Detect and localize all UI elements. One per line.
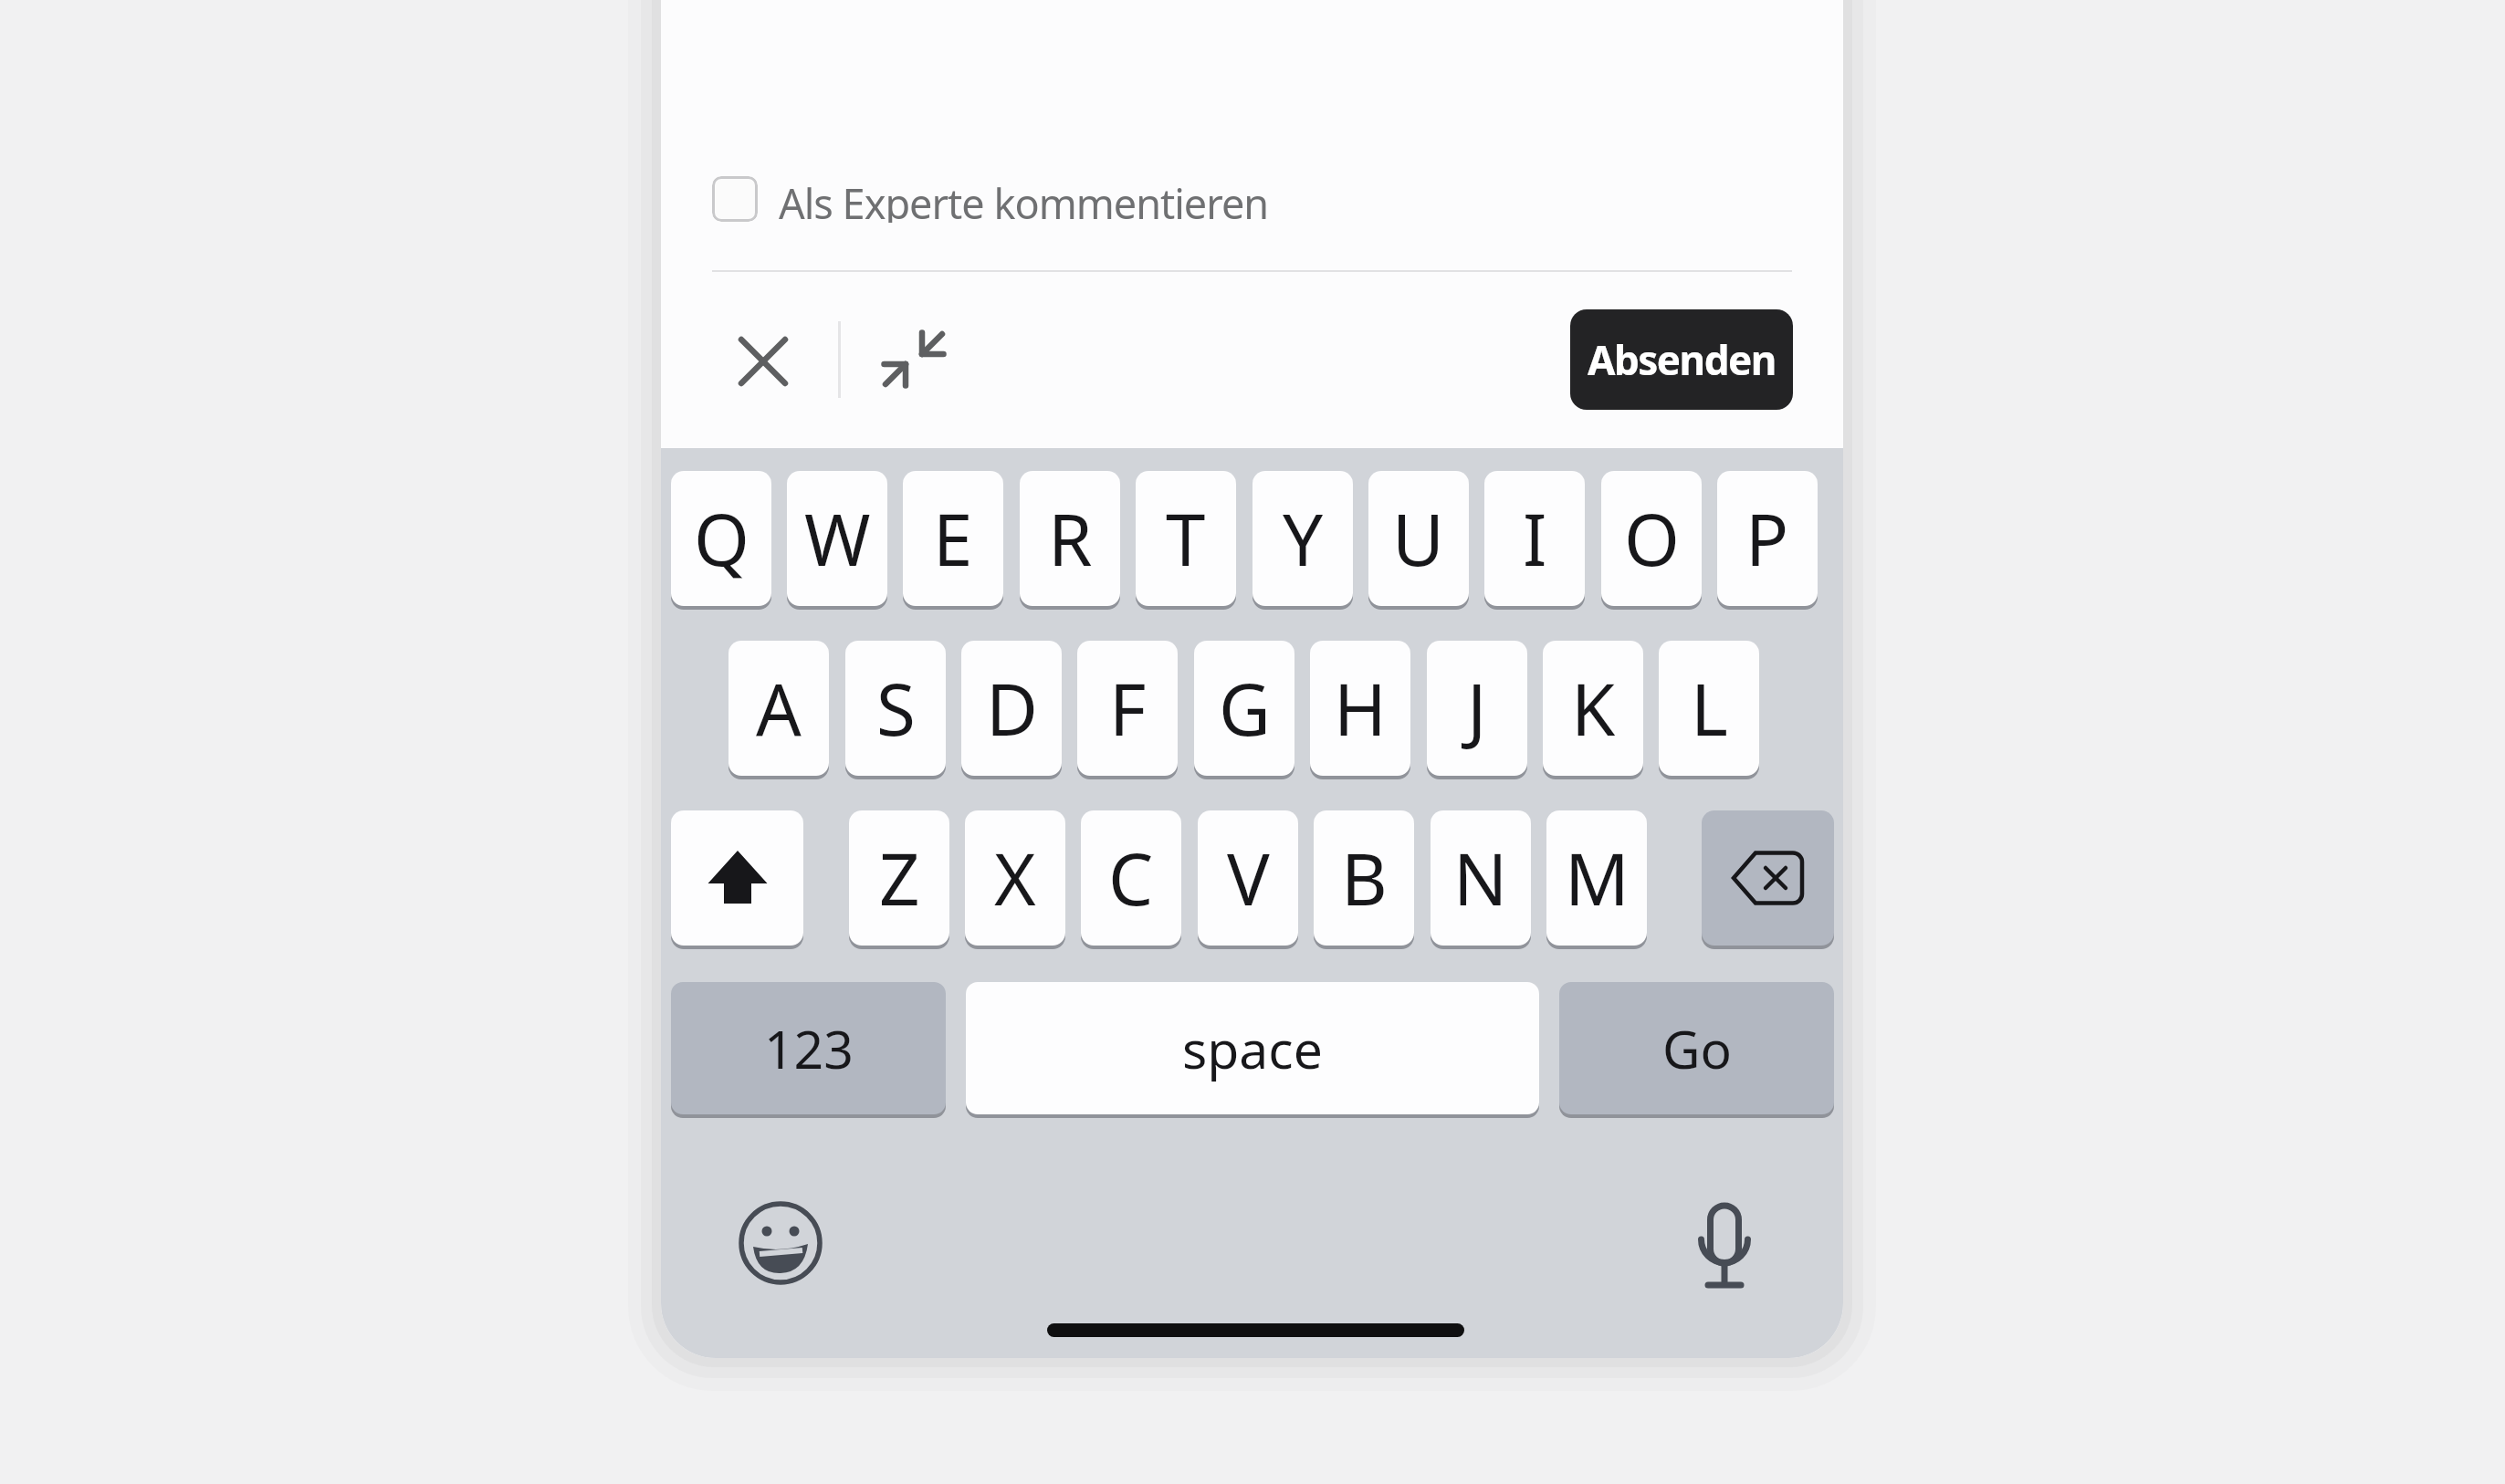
button[interactable]: T — [1136, 471, 1236, 606]
staticText: K — [1571, 660, 1616, 757]
staticText: R — [1048, 490, 1093, 587]
staticText: I — [1523, 490, 1547, 587]
button[interactable]: G — [1194, 641, 1294, 776]
staticText: C — [1108, 830, 1154, 926]
staticText: M — [1565, 830, 1630, 926]
button[interactable] — [1702, 810, 1834, 946]
staticText: Q — [694, 490, 749, 587]
button[interactable]: Als Experte kommentieren — [712, 175, 1269, 223]
staticText: Absenden — [1588, 332, 1776, 387]
staticText: space — [1182, 1013, 1323, 1084]
staticText: W — [804, 490, 871, 587]
button[interactable] — [877, 323, 950, 396]
button[interactable]: space — [966, 982, 1539, 1114]
staticText: B — [1341, 830, 1388, 926]
button[interactable]: Y — [1252, 471, 1353, 606]
staticText: T — [1166, 490, 1206, 587]
button[interactable]: A — [728, 641, 829, 776]
staticText: O — [1624, 490, 1680, 587]
staticText: X — [994, 830, 1036, 926]
button[interactable]: X — [965, 810, 1065, 946]
button[interactable]: S — [845, 641, 946, 776]
button[interactable]: H — [1310, 641, 1410, 776]
staticText: G — [1219, 660, 1271, 757]
button[interactable]: J — [1427, 641, 1527, 776]
button[interactable]: Absenden — [1570, 309, 1793, 410]
staticText: H — [1334, 660, 1387, 757]
button[interactable]: D — [961, 641, 1062, 776]
button[interactable]: P — [1717, 471, 1818, 606]
button[interactable]: U — [1368, 471, 1469, 606]
button[interactable]: W — [787, 471, 887, 606]
button[interactable]: K — [1543, 641, 1643, 776]
button[interactable]: Go — [1559, 982, 1834, 1114]
button[interactable]: C — [1081, 810, 1181, 946]
button[interactable]: F — [1077, 641, 1178, 776]
button[interactable]: L — [1659, 641, 1759, 776]
button[interactable]: E — [903, 471, 1003, 606]
button[interactable]: R — [1020, 471, 1120, 606]
button[interactable]: V — [1198, 810, 1298, 946]
staticText: Y — [1283, 490, 1324, 587]
button[interactable]: B — [1314, 810, 1414, 946]
button[interactable]: 123 — [671, 982, 946, 1114]
button[interactable]: N — [1431, 810, 1531, 946]
staticText: P — [1745, 490, 1789, 587]
button[interactable]: I — [1484, 471, 1585, 606]
button[interactable] — [1674, 1196, 1775, 1296]
button[interactable] — [730, 1193, 831, 1293]
staticText: 123 — [764, 1013, 854, 1084]
staticText: A — [756, 660, 802, 757]
button[interactable]: M — [1546, 810, 1647, 946]
button[interactable]: Z — [849, 810, 949, 946]
button[interactable]: Q — [671, 471, 771, 606]
button[interactable]: O — [1601, 471, 1702, 606]
button[interactable] — [671, 810, 803, 946]
staticText: F — [1109, 660, 1147, 757]
staticText: V — [1227, 830, 1270, 926]
staticText: S — [876, 660, 916, 757]
staticText: Als Experte kommentieren — [779, 175, 1269, 223]
staticText: L — [1691, 660, 1728, 757]
staticText: Go — [1662, 1013, 1732, 1084]
staticText: E — [933, 490, 973, 587]
staticText: J — [1467, 660, 1487, 757]
staticText: N — [1453, 830, 1508, 926]
button[interactable] — [727, 325, 800, 398]
staticText: U — [1392, 490, 1445, 587]
staticText: Z — [879, 830, 920, 926]
staticText: D — [986, 660, 1038, 757]
